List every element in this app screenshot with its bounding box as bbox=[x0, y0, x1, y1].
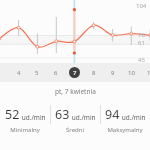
button[interactable]: 63 bbox=[50, 100, 100, 125]
staticText: 52 bbox=[5, 106, 20, 123]
button[interactable]: 94 bbox=[100, 100, 150, 125]
staticText: 104 bbox=[136, 2, 147, 10]
staticText: ud./min bbox=[20, 113, 46, 122]
staticText: 11 bbox=[147, 69, 150, 77]
staticText: 10 bbox=[128, 69, 135, 77]
staticText: ud./min bbox=[120, 113, 146, 122]
staticText: Średni bbox=[66, 126, 84, 134]
staticText: pt, 7 kwietnia bbox=[55, 87, 96, 96]
staticText: 6 bbox=[54, 69, 58, 77]
staticText: Minimalny bbox=[10, 126, 40, 134]
staticText: 5 bbox=[35, 69, 39, 77]
button[interactable]: 52 bbox=[0, 100, 50, 125]
staticText: 45 bbox=[138, 56, 145, 64]
staticText: 7 bbox=[73, 69, 77, 77]
button[interactable]: 5 bbox=[28, 63, 46, 82]
staticText: 61 bbox=[138, 39, 145, 47]
staticText: ud./min bbox=[70, 113, 96, 122]
button[interactable]: 6 bbox=[47, 63, 65, 82]
button[interactable]: 11 bbox=[141, 63, 150, 82]
button[interactable]: 8 bbox=[85, 63, 103, 82]
staticText: 94 bbox=[105, 106, 120, 123]
button[interactable]: 10 bbox=[122, 63, 140, 82]
staticText: 8 bbox=[92, 69, 96, 77]
button[interactable]: 4 bbox=[10, 63, 28, 82]
staticText: 9 bbox=[111, 69, 115, 77]
button[interactable]: 7 bbox=[65, 63, 83, 82]
staticText: 4 bbox=[17, 69, 21, 77]
staticText: 63 bbox=[55, 106, 70, 123]
button[interactable]: 9 bbox=[104, 63, 122, 82]
staticText: 76 bbox=[138, 31, 145, 39]
staticText: Maksymalny bbox=[107, 126, 143, 134]
